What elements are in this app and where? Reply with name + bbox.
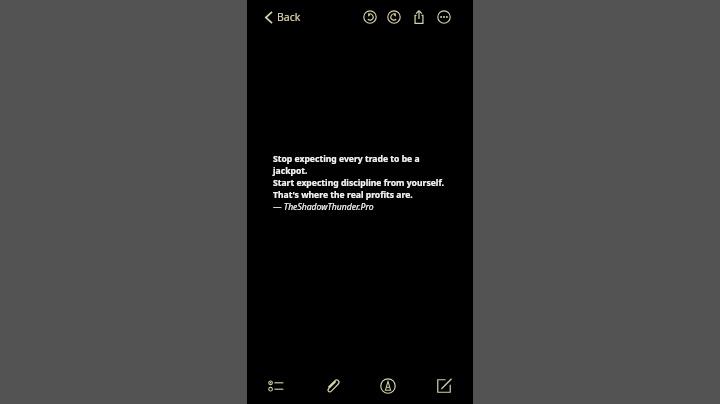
button[interactable]: Undo: [359, 6, 380, 27]
button[interactable]: Back: [261, 5, 305, 29]
staticText: — TheShadowThunder.Pro: [273, 201, 374, 213]
button[interactable]: Markup: [375, 373, 401, 399]
staticText: Back: [277, 10, 301, 24]
staticText: That's where the real profits are.: [273, 189, 413, 201]
button[interactable]: Redo: [383, 6, 404, 27]
staticText: jackpot.: [273, 165, 308, 177]
button[interactable]: Share: [408, 6, 429, 27]
button[interactable]: New note: [431, 373, 457, 399]
button[interactable]: Checklist: [263, 373, 289, 399]
button[interactable]: Attach: [319, 373, 345, 399]
staticText: Stop expecting every trade to be a: [273, 153, 420, 165]
button[interactable]: More options: [433, 6, 454, 27]
staticText: Start expecting discipline from yourself…: [273, 177, 444, 189]
